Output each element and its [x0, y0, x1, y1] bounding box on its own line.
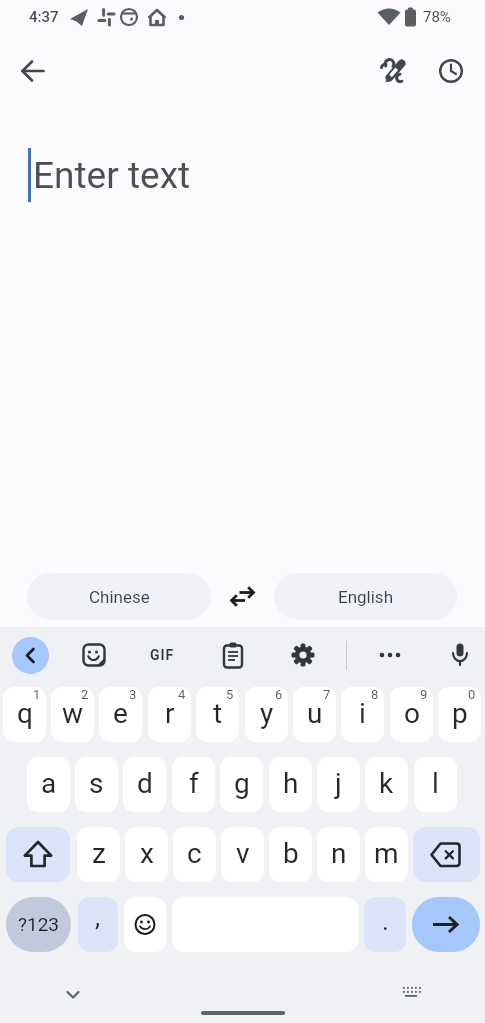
- staticText: 0: [468, 687, 476, 702]
- button[interactable]: .: [364, 897, 406, 952]
- staticText: l: [432, 767, 439, 800]
- button[interactable]: q: [3, 687, 46, 742]
- staticText: Chinese: [89, 587, 150, 607]
- button[interactable]: k: [365, 757, 408, 812]
- staticText: ,: [95, 902, 101, 932]
- button[interactable]: English: [274, 573, 457, 620]
- button[interactable]: r: [148, 687, 191, 742]
- button[interactable]: f: [172, 757, 215, 812]
- staticText: 7: [323, 687, 331, 702]
- staticText: z: [92, 837, 106, 870]
- button[interactable]: w: [51, 687, 94, 742]
- button[interactable]: o: [390, 687, 433, 742]
- button[interactable]: j: [317, 757, 360, 812]
- button[interactable]: [213, 635, 253, 675]
- staticText: 2: [81, 687, 89, 702]
- staticText: English: [338, 587, 394, 607]
- button[interactable]: [413, 827, 480, 882]
- button[interactable]: [224, 578, 260, 614]
- staticText: r: [165, 697, 175, 730]
- staticText: p: [452, 697, 468, 730]
- button[interactable]: [124, 897, 166, 952]
- staticText: n: [331, 837, 347, 870]
- button[interactable]: ?123: [6, 897, 71, 952]
- staticText: GIF: [150, 647, 175, 663]
- button[interactable]: ,: [78, 897, 118, 952]
- button[interactable]: [391, 973, 431, 1013]
- staticText: Enter text: [33, 154, 191, 197]
- button[interactable]: c: [173, 827, 216, 882]
- staticText: x: [140, 837, 154, 870]
- button[interactable]: [74, 635, 114, 675]
- staticText: b: [283, 837, 299, 870]
- button[interactable]: [9, 47, 57, 95]
- staticText: e: [113, 697, 128, 730]
- staticText: g: [234, 767, 250, 800]
- staticText: a: [41, 767, 57, 800]
- staticText: m: [374, 837, 399, 870]
- staticText: 4: [178, 687, 186, 702]
- staticText: w: [62, 697, 84, 730]
- staticText: 4:37: [29, 8, 59, 26]
- staticText: 1: [33, 687, 41, 702]
- button[interactable]: d: [123, 757, 166, 812]
- button[interactable]: [53, 974, 93, 1014]
- button[interactable]: l: [414, 757, 457, 812]
- button[interactable]: [12, 637, 49, 674]
- button[interactable]: [370, 635, 410, 675]
- staticText: v: [236, 837, 250, 870]
- button[interactable]: e: [99, 687, 142, 742]
- staticText: o: [404, 697, 420, 730]
- staticText: 9: [420, 687, 428, 702]
- button[interactable]: u: [293, 687, 336, 742]
- button[interactable]: [440, 635, 480, 675]
- staticText: ?123: [18, 913, 60, 935]
- staticText: d: [137, 767, 153, 800]
- button[interactable]: [6, 827, 70, 882]
- button[interactable]: i: [341, 687, 384, 742]
- staticText: c: [187, 837, 202, 870]
- button[interactable]: b: [269, 827, 312, 882]
- staticText: f: [189, 767, 199, 800]
- button[interactable]: [283, 635, 323, 675]
- staticText: 8: [371, 687, 379, 702]
- staticText: y: [260, 697, 274, 730]
- button[interactable]: [427, 47, 475, 95]
- staticText: i: [359, 697, 366, 730]
- staticText: 78%: [423, 8, 451, 26]
- staticText: t: [213, 697, 223, 730]
- button[interactable]: g: [220, 757, 263, 812]
- button[interactable]: [412, 897, 480, 952]
- button[interactable]: y: [245, 687, 288, 742]
- staticText: 5: [226, 687, 234, 702]
- button[interactable]: s: [75, 757, 118, 812]
- button[interactable]: n: [317, 827, 360, 882]
- staticText: 3: [129, 687, 137, 702]
- button[interactable]: p: [438, 687, 481, 742]
- button[interactable]: a: [27, 757, 70, 812]
- button[interactable]: h: [269, 757, 312, 812]
- staticText: k: [379, 767, 394, 800]
- button[interactable]: v: [221, 827, 264, 882]
- staticText: .: [382, 906, 389, 936]
- staticText: s: [89, 767, 104, 800]
- button[interactable]: z: [77, 827, 120, 882]
- staticText: u: [307, 697, 323, 730]
- button[interactable]: x: [125, 827, 168, 882]
- button[interactable]: t: [196, 687, 239, 742]
- button[interactable]: m: [365, 827, 408, 882]
- staticText: q: [17, 697, 33, 730]
- staticText: j: [335, 767, 342, 800]
- button[interactable]: Chinese: [27, 573, 211, 620]
- button[interactable]: [370, 47, 418, 95]
- staticText: h: [283, 767, 299, 800]
- staticText: 6: [275, 687, 283, 702]
